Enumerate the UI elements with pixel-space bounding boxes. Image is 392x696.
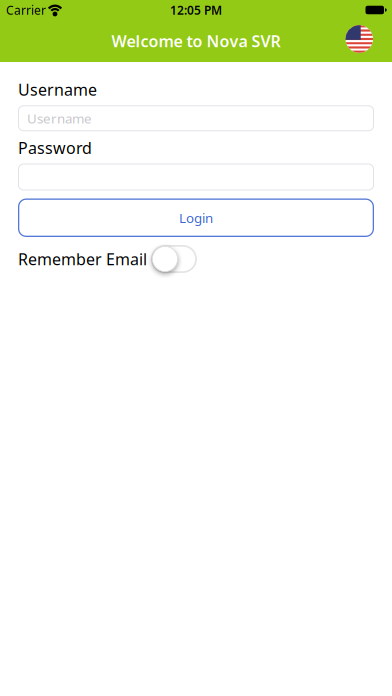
staticText: Password [18,137,92,158]
staticText: Username [27,109,92,127]
staticText: Remember Email [18,248,147,270]
staticText: Username [18,79,97,100]
button[interactable]: Remember Email [151,245,197,273]
button[interactable]: Username [18,105,374,131]
staticText: Carrier [6,2,46,18]
staticText: Welcome to Nova SVR [111,30,280,52]
button[interactable]: Language: English [345,25,373,53]
staticText: Login [179,209,213,227]
button[interactable]: Password [18,163,374,190]
button[interactable]: Login [18,198,374,237]
staticText: 12:05 PM [170,2,222,18]
